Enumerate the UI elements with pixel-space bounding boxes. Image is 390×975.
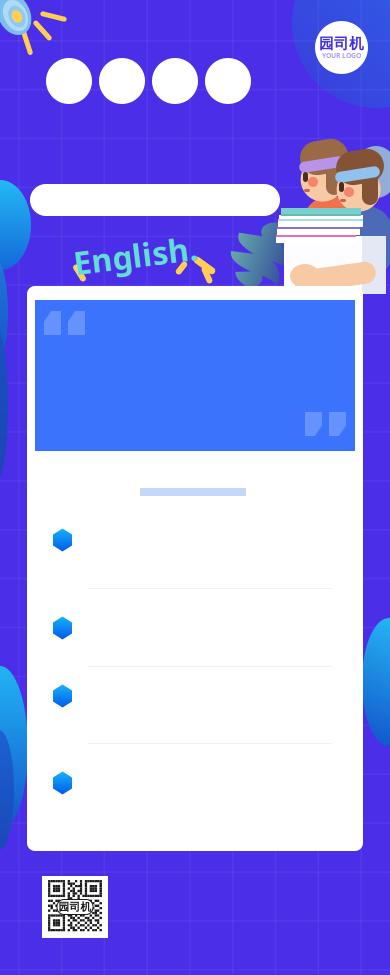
button[interactable]: Title: [30, 184, 280, 216]
button[interactable]: [27, 588, 363, 666]
button[interactable]: [27, 666, 363, 743]
button[interactable]: Logo: [315, 21, 368, 74]
button[interactable]: QR code: [42, 876, 108, 938]
button[interactable]: [27, 743, 363, 828]
staticText: 园司机: [58, 900, 91, 913]
staticText: English.: [73, 234, 198, 276]
staticText: 园司机: [319, 34, 364, 52]
staticText: YOUR LOGO: [322, 51, 361, 60]
button[interactable]: [27, 502, 363, 588]
